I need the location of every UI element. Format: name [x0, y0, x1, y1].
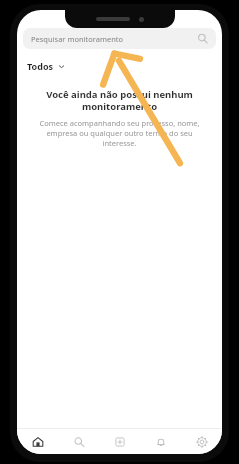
button[interactable]: Settings: [181, 429, 222, 454]
button[interactable]: Home: [17, 429, 58, 454]
staticText: Pesquisar monitoramento: [31, 34, 197, 44]
button[interactable]: Pesquisar monitoramento: [23, 28, 216, 49]
staticText: Você ainda não possui nenhum monitoramen…: [31, 88, 208, 113]
button[interactable]: Search: [58, 429, 99, 454]
staticText: Todos: [27, 60, 54, 72]
button[interactable]: Todos: [25, 58, 67, 74]
button[interactable]: Add: [99, 429, 140, 454]
button[interactable]: Notifications: [140, 429, 181, 454]
staticText: Comece acompanhando seu processo, nome, …: [35, 118, 204, 148]
